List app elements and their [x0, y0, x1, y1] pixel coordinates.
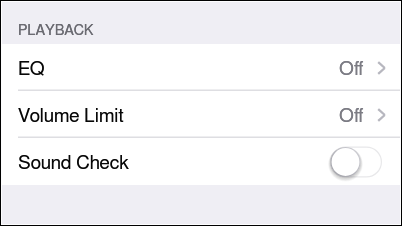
staticText: Volume Limit	[18, 107, 124, 126]
staticText: PLAYBACK	[18, 23, 94, 38]
staticText: Off	[339, 107, 364, 126]
button[interactable]: Volume Limit	[2, 91, 400, 138]
staticText: Sound Check	[18, 154, 130, 173]
staticText: EQ	[18, 60, 45, 79]
staticText: EQ	[18, 60, 45, 79]
staticText: Off	[339, 107, 364, 126]
staticText: PLAYBACK	[18, 23, 94, 38]
button[interactable]: Sound Check toggle, off	[328, 143, 384, 181]
staticText: Off	[339, 60, 364, 79]
button[interactable]: EQ	[2, 44, 400, 91]
staticText: Off	[339, 60, 364, 79]
staticText: Sound Check	[18, 154, 130, 173]
staticText: Volume Limit	[18, 107, 124, 126]
